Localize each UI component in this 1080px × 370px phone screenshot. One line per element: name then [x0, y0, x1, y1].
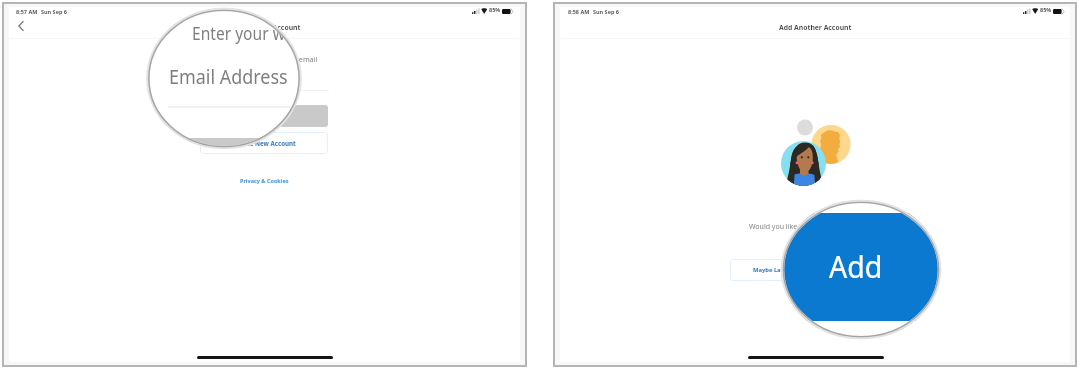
staticText: 8:58 AM [568, 8, 590, 15]
staticText: 8:57 AM [16, 8, 38, 15]
staticText: Email Address [241, 78, 289, 88]
staticText: Privacy & Cookies [240, 177, 289, 184]
staticText: Add [829, 245, 882, 287]
staticText: 85% [1040, 6, 1052, 12]
staticText: Add [855, 266, 867, 274]
staticText: Sun Sep 6 [41, 8, 67, 15]
staticText: Enter your work or school email [210, 54, 318, 64]
staticText: Enter your work or school email [192, 21, 300, 45]
button[interactable]: Next [200, 105, 328, 127]
staticText: Add Another Account [779, 23, 852, 32]
button[interactable]: Add [819, 259, 902, 281]
staticText: Email Address [169, 63, 288, 90]
staticText: Would you like to add another account? [749, 222, 879, 232]
button[interactable]: Create New Account [200, 132, 328, 154]
button[interactable]: Privacy & Cookies [237, 175, 291, 186]
staticText: Maybe Later [753, 266, 790, 274]
staticText: Create New Account [233, 139, 296, 147]
button[interactable]: Back [12, 17, 30, 35]
staticText: Sun Sep 6 [593, 8, 619, 15]
button[interactable]: Maybe Later [730, 259, 813, 281]
staticText: 85% [489, 6, 501, 12]
staticText: Add Another Account [228, 23, 301, 32]
